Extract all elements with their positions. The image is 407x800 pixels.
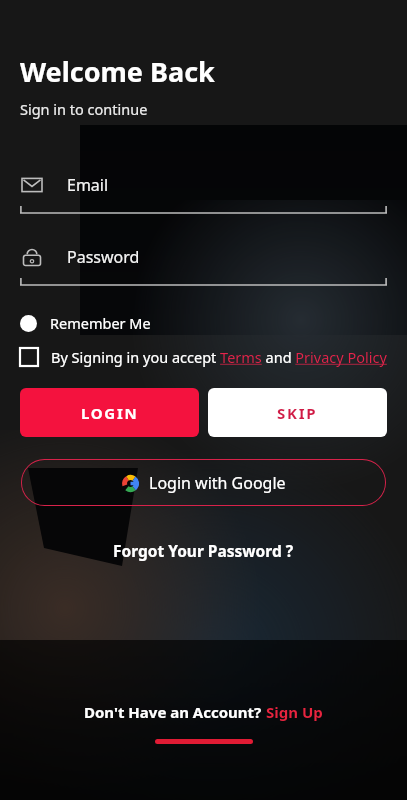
- staticText: Don't Have an Account?: [84, 702, 266, 722]
- button[interactable]: Password: [0, 236, 407, 278]
- staticText: LOGIN: [81, 403, 139, 423]
- staticText: SKIP: [277, 403, 318, 423]
- button[interactable]: Remember Me: [20, 310, 151, 336]
- button[interactable]: Login with Google: [21, 459, 386, 506]
- button[interactable]: SKIP: [208, 388, 387, 437]
- other: Home indicator: [155, 739, 253, 744]
- staticText: Welcome Back: [20, 53, 215, 90]
- staticText: Sign Up: [266, 702, 323, 722]
- button[interactable]: Don't Have an Account?: [80, 698, 327, 726]
- button[interactable]: Email: [0, 164, 407, 206]
- staticText: Password: [67, 246, 140, 268]
- button[interactable]: LOGIN: [20, 388, 199, 437]
- staticText: Login with Google: [149, 472, 286, 494]
- staticText: Email: [67, 174, 109, 196]
- staticText: Forgot Your Password ?: [113, 540, 294, 561]
- button[interactable]: By Signing in you accept Terms and Priva…: [20, 347, 393, 367]
- button[interactable]: Forgot Your Password ?: [103, 535, 304, 566]
- staticText: Remember Me: [50, 313, 151, 333]
- staticText: By Signing in you accept Terms and Priva…: [51, 347, 387, 367]
- staticText: Sign in to continue: [20, 99, 148, 119]
